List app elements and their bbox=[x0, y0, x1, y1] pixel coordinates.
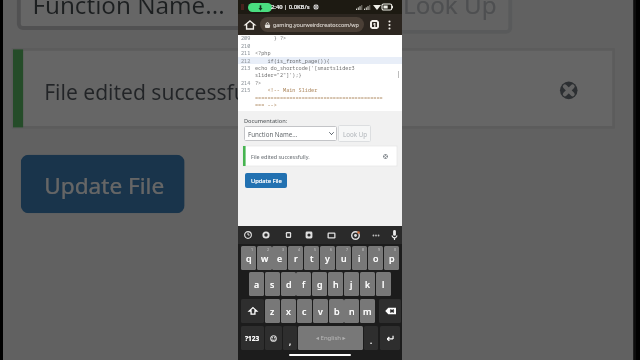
staticText: . bbox=[370, 335, 373, 346]
staticText: Update File bbox=[44, 170, 165, 201]
button[interactable]: 7 bbox=[336, 246, 351, 270]
button[interactable]: z bbox=[265, 299, 280, 323]
button[interactable]: gaming.yourweirdcreator.com/wp bbox=[260, 17, 364, 32]
button[interactable]: Update File bbox=[245, 173, 287, 188]
button[interactable]: 0 bbox=[384, 246, 399, 270]
button[interactable]: l bbox=[376, 272, 391, 296]
button[interactable]: g bbox=[312, 272, 327, 296]
staticText: ?> bbox=[255, 79, 262, 86]
button[interactable]: m bbox=[360, 299, 375, 323]
button[interactable]: 5 bbox=[304, 246, 319, 270]
button[interactable]: Look Up bbox=[338, 125, 371, 142]
button[interactable]: b bbox=[329, 299, 344, 323]
staticText: f bbox=[302, 278, 306, 290]
staticText: <!-- Main Slider bbox=[255, 86, 318, 93]
button[interactable]: Function Name... bbox=[244, 126, 337, 141]
staticText: b bbox=[334, 305, 340, 317]
button[interactable]: Theme file editor bbox=[238, 35, 402, 111]
button[interactable]: More options bbox=[383, 14, 395, 35]
button[interactable]: 4 bbox=[288, 246, 303, 270]
staticText: === --> bbox=[255, 101, 277, 108]
staticText: 8 bbox=[362, 247, 365, 252]
staticText: 4 bbox=[298, 247, 301, 252]
staticText: y bbox=[325, 252, 330, 264]
button[interactable]: k bbox=[360, 272, 375, 296]
staticText: Documentation: bbox=[244, 117, 288, 125]
staticText: a bbox=[254, 278, 260, 290]
button[interactable]: Comma bbox=[283, 326, 297, 350]
staticText: 3 bbox=[282, 247, 285, 252]
staticText: q bbox=[246, 252, 252, 264]
button[interactable]: 9 bbox=[368, 246, 383, 270]
staticText: Function Name... bbox=[32, 0, 227, 18]
button[interactable]: 1 bbox=[241, 246, 256, 270]
button[interactable]: Keyboard tool 1 bbox=[241, 226, 255, 244]
button[interactable]: Dismiss this notice bbox=[380, 151, 391, 162]
staticText: e bbox=[277, 252, 283, 264]
button[interactable]: Symbols bbox=[241, 326, 264, 350]
button[interactable]: Look Up bbox=[383, 0, 512, 34]
staticText: w bbox=[261, 252, 269, 264]
button[interactable]: j bbox=[344, 272, 359, 296]
button[interactable]: Keyboard tool 7 bbox=[369, 226, 383, 244]
button[interactable]: Keyboard tool 2 bbox=[259, 226, 273, 244]
button[interactable]: Update File bbox=[21, 155, 185, 213]
staticText: Look Up bbox=[343, 130, 367, 138]
button[interactable]: Backspace bbox=[379, 299, 401, 323]
staticText: 0 bbox=[394, 247, 397, 252]
button[interactable]: Period bbox=[364, 326, 378, 350]
button[interactable]: Enter bbox=[380, 326, 400, 350]
button[interactable]: Keyboard tool 6 bbox=[348, 226, 362, 244]
staticText: o bbox=[373, 252, 379, 264]
button[interactable]: 8 bbox=[352, 246, 367, 270]
button[interactable]: Shift bbox=[241, 299, 264, 323]
button[interactable]: Function Name... bbox=[17, 0, 380, 30]
staticText: h bbox=[333, 278, 339, 290]
button[interactable]: c bbox=[297, 299, 312, 323]
staticText: 212 bbox=[241, 57, 251, 64]
button[interactable]: Home bbox=[242, 14, 257, 35]
staticText: 7 bbox=[346, 247, 349, 252]
staticText: slider="2"]');} bbox=[255, 71, 302, 78]
button[interactable]: Space bbox=[298, 326, 363, 350]
button[interactable]: 6 bbox=[320, 246, 335, 270]
staticText: } ?> bbox=[255, 34, 287, 41]
staticText: File edited successfully. bbox=[251, 153, 310, 160]
button[interactable]: Dismiss this notice bbox=[547, 69, 590, 112]
button[interactable]: f bbox=[296, 272, 311, 296]
staticText: ?123 bbox=[245, 334, 260, 343]
button[interactable]: Voice input bbox=[388, 229, 400, 241]
staticText: n bbox=[349, 305, 355, 317]
staticText: 215 bbox=[241, 86, 251, 93]
button[interactable]: 3 bbox=[272, 246, 287, 270]
staticText: Function Name... bbox=[248, 130, 298, 138]
staticText: g bbox=[317, 278, 323, 290]
button[interactable]: h bbox=[328, 272, 343, 296]
button[interactable]: v bbox=[313, 299, 328, 323]
staticText: s bbox=[270, 278, 275, 290]
button[interactable]: a bbox=[249, 272, 264, 296]
staticText: 210 bbox=[241, 42, 251, 49]
button[interactable]: Keyboard tool 4 bbox=[302, 226, 316, 244]
staticText: , bbox=[289, 336, 292, 347]
staticText: echo do_shortcode('[smartslider3 bbox=[255, 64, 355, 71]
button[interactable]: n bbox=[344, 299, 359, 323]
staticText: 9 bbox=[378, 247, 381, 252]
staticText: 213 bbox=[241, 64, 251, 71]
staticText: 1 bbox=[251, 247, 254, 252]
button[interactable]: s bbox=[265, 272, 280, 296]
staticText: 211 bbox=[241, 49, 251, 56]
button[interactable]: Keyboard tool 5 bbox=[324, 226, 338, 244]
button[interactable]: x bbox=[281, 299, 296, 323]
button[interactable]: d bbox=[281, 272, 296, 296]
staticText: k bbox=[365, 278, 371, 290]
staticText: u bbox=[341, 252, 347, 264]
button[interactable]: 2 bbox=[257, 246, 272, 270]
button[interactable]: Keyboard tool 3 bbox=[281, 226, 295, 244]
staticText: t bbox=[310, 252, 314, 264]
staticText: if(is_front_page()){ bbox=[255, 57, 330, 64]
staticText: 1 bbox=[373, 21, 376, 28]
button[interactable]: Tabs bbox=[367, 14, 381, 35]
staticText: 5 bbox=[314, 247, 317, 252]
button[interactable]: Emoji bbox=[265, 326, 282, 350]
